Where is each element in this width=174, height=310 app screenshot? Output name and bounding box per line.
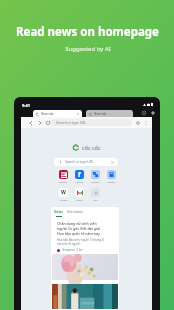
button[interactable]: Menu	[142, 117, 150, 128]
staticText: Suggested by AI	[65, 45, 111, 53]
staticText: Search or type URL	[65, 160, 94, 164]
staticText: Gmail	[76, 198, 83, 201]
staticText: f	[78, 170, 81, 179]
button[interactable]: New tab	[33, 110, 82, 117]
button[interactable]: New tab	[149, 109, 156, 116]
button[interactable]: Search or type URL	[54, 158, 118, 166]
button[interactable]: f	[75, 170, 84, 183]
staticText: Google D...	[107, 180, 116, 183]
button[interactable]: Forward	[36, 117, 44, 128]
button[interactable]: Back	[27, 117, 35, 128]
staticText: Add	[93, 198, 98, 201]
staticText: Wikipedia	[59, 198, 68, 201]
staticText: Chân dung nữ sinh viên người Úc gốc Việt…	[57, 221, 105, 236]
staticText: W	[61, 189, 66, 196]
button[interactable]: Reload	[44, 117, 52, 128]
staticText: Read news on homepage	[16, 24, 159, 40]
button[interactable]: W	[59, 188, 68, 201]
button[interactable]: Google Tr...	[91, 170, 100, 183]
button[interactable]: Chân dung nữ sinh viên người Úc gốc Việt…	[57, 221, 105, 252]
button[interactable]: Bookmark	[134, 117, 142, 128]
button[interactable]: New tab	[86, 110, 133, 117]
staticText: New tab	[41, 112, 54, 116]
staticText: Facebook	[75, 180, 84, 183]
button[interactable]: Search or type URL	[51, 119, 132, 126]
staticText: cốc cốc	[82, 144, 101, 151]
button[interactable]: Google D...	[107, 170, 116, 183]
button[interactable]: News	[54, 210, 63, 217]
staticText: Search or type URL	[56, 120, 87, 125]
staticText: Google Tr...	[91, 180, 100, 183]
staticText: Vnexpress	[59, 180, 68, 183]
staticText: 9:41	[22, 103, 30, 108]
button[interactable]: Gmail	[75, 188, 84, 201]
button[interactable]: Vnexpress	[59, 170, 68, 183]
staticText: New tab	[94, 112, 107, 116]
button[interactable]: Hot videos	[67, 210, 83, 214]
button[interactable]: Profile	[140, 109, 147, 116]
staticText: Hoa hậu đầu tiên, người 13 tháng 8, với …	[57, 238, 105, 246]
staticText: News	[54, 210, 63, 214]
button[interactable]: Add	[91, 188, 100, 201]
staticText: Vnexpress · 2 hrs	[62, 248, 83, 252]
